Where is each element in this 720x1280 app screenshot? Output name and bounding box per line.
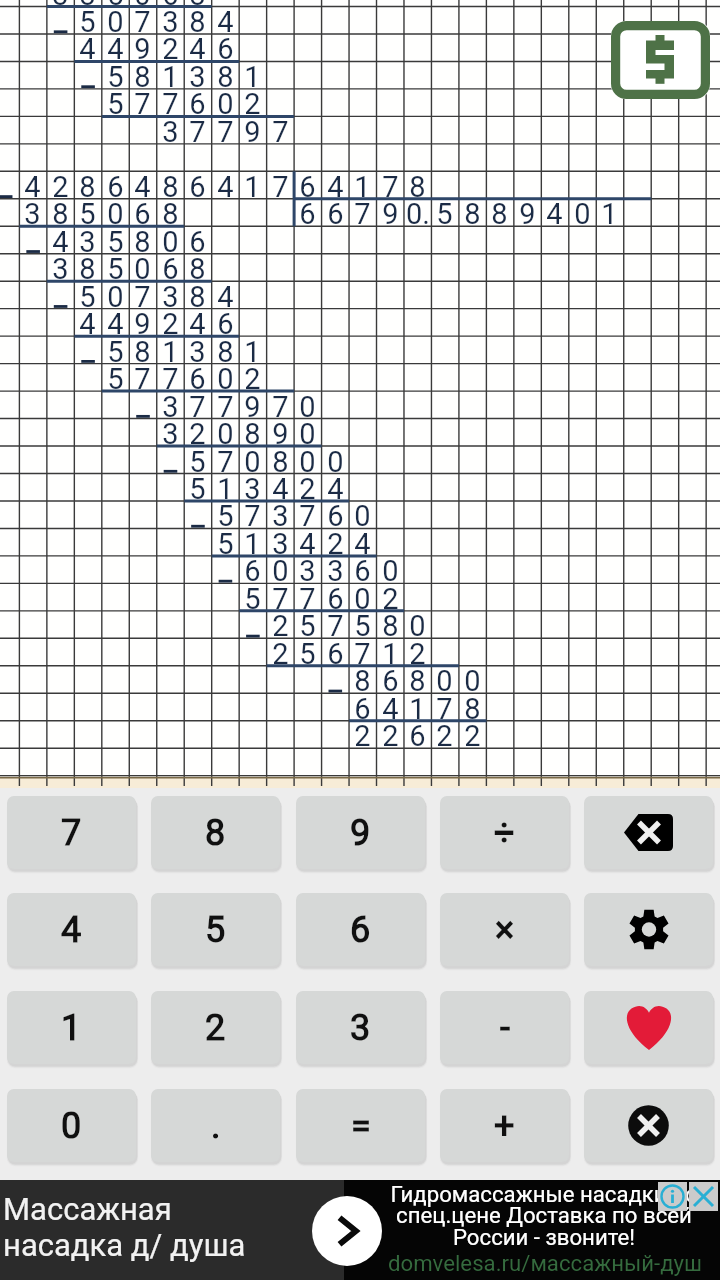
staticText: 7 [134,362,151,389]
staticText: 6 [189,170,206,197]
staticText: 5 [299,609,316,636]
button[interactable]: - [440,991,569,1064]
button[interactable]: 9 [296,796,425,869]
staticText: 2 [189,417,206,444]
staticText: 8 [272,445,289,472]
staticText: 1 [244,170,261,197]
staticText: 2 [382,582,399,609]
button[interactable]: 1 [7,991,136,1064]
staticText: 5 [79,280,96,307]
staticText: 2 [52,170,69,197]
button[interactable]: 7 [7,796,136,869]
staticText: - [500,1007,510,1049]
button[interactable]: 2 [151,991,280,1064]
staticText: 2 [464,719,481,746]
staticText: 6 [327,637,344,664]
staticText: 6 [299,170,316,197]
staticText: 4 [107,32,124,59]
button[interactable]: ÷ [440,796,569,869]
staticText: 1 [244,60,261,87]
button[interactable]: Buy premium [611,21,710,99]
staticText: 0 [134,0,151,5]
button[interactable]: close [584,1089,713,1162]
staticText: 2 [299,472,316,499]
staticText: 0 [464,664,481,691]
staticText: 0 [272,554,289,581]
staticText: 6 [327,197,344,224]
staticText: 5 [436,197,453,224]
staticText: 0 [299,417,316,444]
staticText: 2 [354,719,371,746]
staticText: 6 [327,582,344,609]
staticText: 0 [409,609,426,636]
staticText: 7 [327,609,344,636]
staticText: 1 [601,197,618,224]
button[interactable]: del [584,796,713,869]
staticText: 7 [134,280,151,307]
staticText: 1 [382,637,399,664]
staticText: 5 [217,499,234,526]
staticText: 4 [546,197,563,224]
staticText: 2 [162,32,179,59]
staticText: 6 [354,692,371,719]
staticText: 7 [354,197,371,224]
staticText: 3 [189,335,206,362]
staticText: 8 [52,197,69,224]
button[interactable]: Close ad [689,1182,718,1211]
staticText: 6 [354,554,371,581]
staticText: 5 [189,472,206,499]
staticText: 3 [162,115,179,142]
staticText: 3 [327,554,344,581]
staticText: 6 [189,362,206,389]
staticText: 4 [217,280,234,307]
staticText: 6 [299,197,316,224]
staticText: 7 [272,170,289,197]
staticText: 8 [189,0,206,5]
button[interactable]: 4 [7,893,136,966]
staticText: 0 [574,197,591,224]
staticText: 7 [272,115,289,142]
staticText: 3 [79,225,96,252]
staticText: 8 [464,197,481,224]
staticText: 8 [464,692,481,719]
staticText: 0 [327,445,344,472]
staticText: 3 [272,499,289,526]
staticText: 2 [244,362,261,389]
staticText: 4 [327,170,344,197]
staticText: 5 [107,225,124,252]
button[interactable]: 5 [151,893,280,966]
button[interactable]: Advertisement [0,1180,720,1280]
button[interactable]: 3 [296,991,425,1064]
staticText: 8 [491,197,508,224]
staticText: 9 [244,390,261,417]
staticText: 6 [217,307,234,334]
staticText: 5 [107,0,124,5]
staticText: 9 [244,115,261,142]
staticText: 5 [107,252,124,279]
button[interactable]: Ad info [658,1182,687,1211]
button[interactable]: 8 [151,796,280,869]
button[interactable]: 6 [296,893,425,966]
staticText: 8 [162,170,179,197]
staticText: 3 [24,197,41,224]
staticText: 7 [217,115,234,142]
staticText: 1 [61,1007,82,1049]
button[interactable]: + [440,1089,569,1162]
staticText: 2 [272,637,289,664]
staticText: 8 [409,170,426,197]
staticText: 6 [409,719,426,746]
staticText: 9 [519,197,536,224]
staticText: 0 [299,390,316,417]
button[interactable]: × [440,893,569,966]
button[interactable]: heart [584,991,713,1064]
staticText: 5 [107,362,124,389]
button[interactable]: gear [584,893,713,966]
staticText: 0 [107,280,124,307]
staticText: 8 [217,335,234,362]
staticText: 7 [272,390,289,417]
button[interactable]: . [151,1089,280,1162]
button[interactable]: 0 [7,1089,136,1162]
button[interactable]: = [296,1089,425,1162]
staticText: 7 [134,5,151,32]
staticText: 4 [272,472,289,499]
